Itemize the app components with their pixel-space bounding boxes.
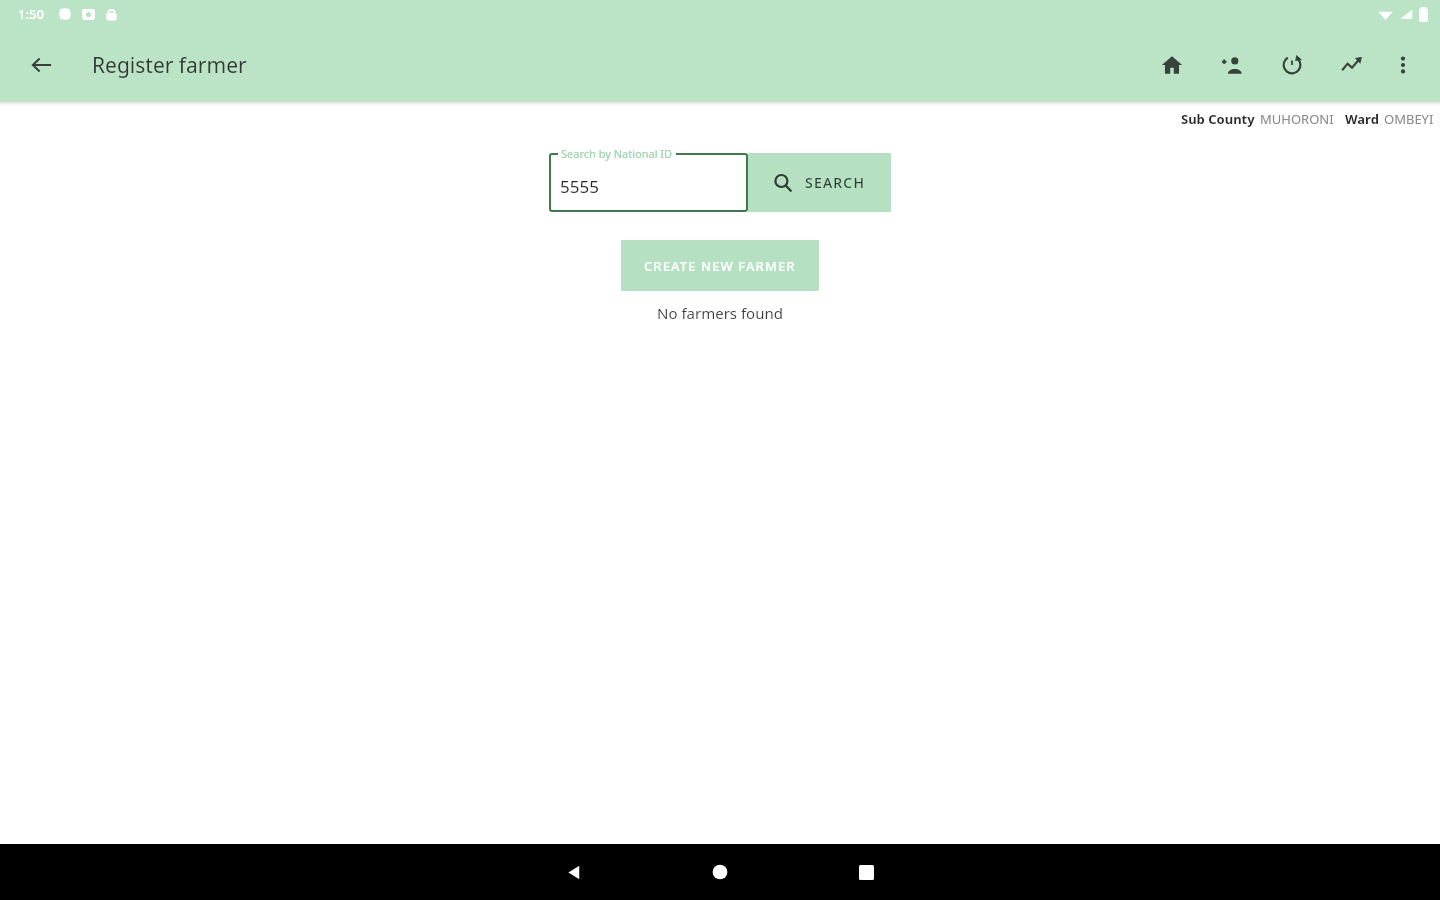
button[interactable]: Refresh [1271, 44, 1313, 86]
staticText: No farmers found [657, 303, 783, 323]
button[interactable]: Recents [842, 848, 890, 896]
button[interactable]: Add person [1211, 44, 1253, 86]
button[interactable]: 5555 [549, 153, 748, 212]
button[interactable]: Back [550, 848, 598, 896]
staticText: Sub County [1181, 110, 1255, 128]
staticText: Register farmer [92, 51, 247, 80]
button[interactable]: CREATE NEW FARMER [621, 240, 819, 291]
button[interactable]: Home [696, 848, 744, 896]
button[interactable]: Statistics [1331, 44, 1373, 86]
staticText: 5555 [560, 175, 599, 198]
staticText: CREATE NEW FARMER [644, 257, 796, 275]
button[interactable]: SEARCH [748, 153, 891, 212]
staticText: Ward [1345, 110, 1379, 128]
staticText: 1:50 [18, 5, 44, 23]
staticText: OMBEYI [1384, 110, 1434, 128]
button[interactable]: Back [20, 43, 64, 87]
staticText: MUHORONI [1260, 110, 1334, 128]
staticText: Search by National ID [561, 146, 673, 161]
button[interactable]: More options [1382, 44, 1424, 86]
button[interactable]: Home [1151, 44, 1193, 86]
staticText: SEARCH [805, 173, 866, 192]
